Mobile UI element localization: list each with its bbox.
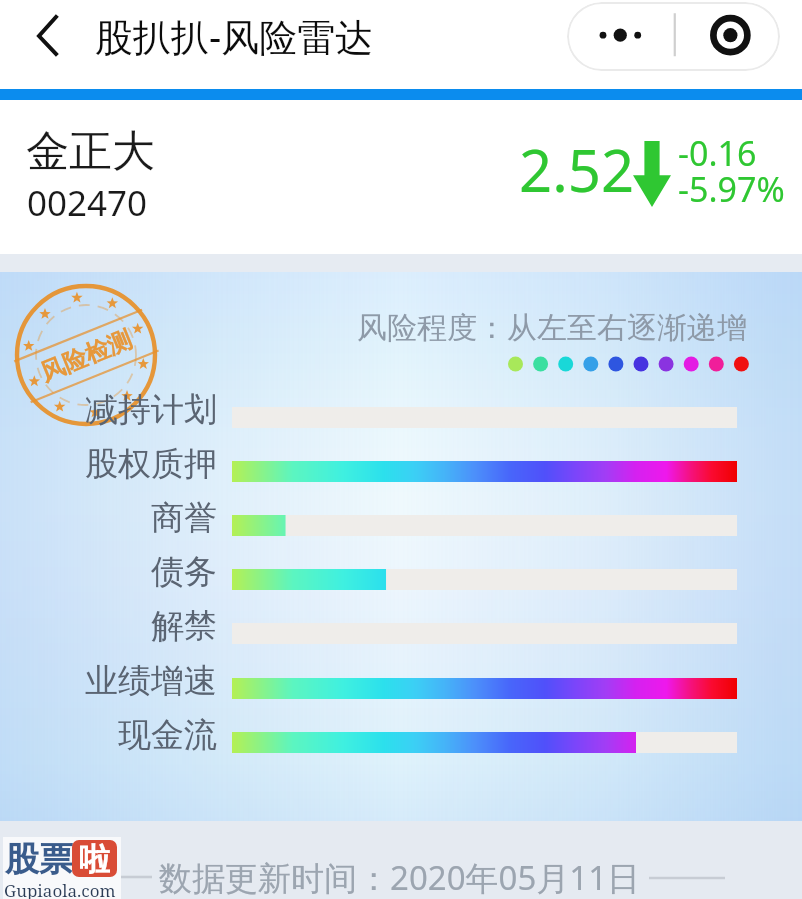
staticText: 商誉 <box>0 497 217 539</box>
staticText: 金正大 <box>26 125 155 179</box>
staticText: 股票 <box>5 838 73 881</box>
staticText: 啦 <box>79 840 110 877</box>
staticText: 2.52 <box>519 130 635 209</box>
staticText: 解禁 <box>0 605 217 647</box>
button[interactable]: More options <box>567 2 780 71</box>
staticText: -0.16 <box>678 130 757 176</box>
staticText: 002470 <box>27 179 148 227</box>
staticText: 风险检测 <box>36 324 136 388</box>
staticText: 股扒扒-风险雷达 <box>95 10 374 62</box>
staticText: 减持计划 <box>0 389 217 431</box>
button[interactable]: Back <box>20 8 76 64</box>
staticText: -5.97% <box>678 166 785 212</box>
staticText: 股权质押 <box>0 443 217 485</box>
staticText: 现金流 <box>0 714 217 756</box>
staticText: 风险程度：从左至右逐渐递增 <box>357 309 747 347</box>
staticText: 数据更新时间：2020年05月11日 <box>159 855 641 899</box>
staticText: Gupiaola.com <box>4 879 116 899</box>
staticText: 业绩增速 <box>0 660 217 702</box>
staticText: 债务 <box>0 551 217 593</box>
